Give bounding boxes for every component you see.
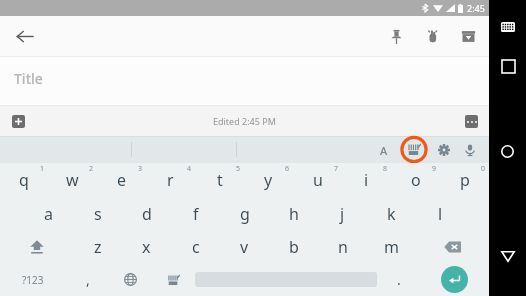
button[interactable]: Switch keyboard <box>397 136 431 163</box>
staticText: g <box>240 203 250 225</box>
staticText: f <box>193 203 199 225</box>
staticText: Title <box>14 69 43 88</box>
staticText: a <box>44 203 53 225</box>
button[interactable]: Recents <box>495 53 521 79</box>
staticText: 9 <box>432 164 437 174</box>
staticText: 3 <box>138 164 143 174</box>
button[interactable]: Text style <box>371 137 397 163</box>
staticText: 0 <box>481 164 486 174</box>
button[interactable]: Space <box>195 269 377 290</box>
button[interactable]: Archive <box>453 21 483 51</box>
button[interactable]: i <box>342 163 391 197</box>
button[interactable]: r <box>146 163 195 197</box>
staticText: Edited 2:45 PM <box>213 115 276 127</box>
button[interactable]: t <box>195 163 244 197</box>
button[interactable]: Pin <box>381 21 411 51</box>
button[interactable]: n <box>318 230 367 263</box>
button[interactable]: u <box>293 163 342 197</box>
staticText: l <box>438 203 443 225</box>
staticText: i <box>364 169 369 191</box>
staticText: c <box>192 236 200 258</box>
button[interactable]: Add <box>8 111 28 131</box>
staticText: k <box>387 203 396 225</box>
staticText: . <box>397 270 401 289</box>
button[interactable]: Back <box>496 244 520 268</box>
button[interactable]: Back <box>8 20 40 52</box>
staticText: w <box>66 169 79 191</box>
button[interactable]: Settings <box>431 137 457 163</box>
button[interactable]: . <box>377 263 420 296</box>
staticText: 2:45 <box>467 2 485 14</box>
staticText: ?123 <box>22 273 44 287</box>
button[interactable]: Voice input <box>457 137 483 163</box>
button[interactable]: Enter <box>420 263 489 296</box>
staticText: b <box>289 236 299 258</box>
staticText: u <box>313 169 323 191</box>
staticText: 5 <box>236 164 241 174</box>
staticText: z <box>94 236 102 258</box>
staticText: o <box>411 169 421 191</box>
button[interactable]: More options <box>461 111 481 131</box>
button[interactable]: k <box>367 197 416 230</box>
button[interactable]: e <box>97 163 146 197</box>
staticText: t <box>217 169 223 191</box>
staticText: 2 <box>89 164 94 174</box>
button[interactable]: l <box>416 197 465 230</box>
button[interactable]: m <box>367 230 416 263</box>
button[interactable]: Home <box>496 140 519 163</box>
button[interactable]: v <box>220 230 269 263</box>
staticText: 8 <box>383 164 388 174</box>
button[interactable]: c <box>171 230 220 263</box>
button[interactable]: Hide keyboard <box>497 16 519 38</box>
staticText: y <box>264 169 273 191</box>
staticText: d <box>142 203 152 225</box>
staticText: s <box>94 203 102 225</box>
staticText: q <box>19 169 29 191</box>
staticText: x <box>142 236 151 258</box>
staticText: 6 <box>285 164 290 174</box>
button[interactable]: z <box>73 230 122 263</box>
button[interactable]: a <box>24 197 73 230</box>
button[interactable]: q <box>0 163 48 197</box>
staticText: A <box>380 143 388 158</box>
button[interactable]: w <box>48 163 97 197</box>
button[interactable]: g <box>220 197 269 230</box>
button[interactable]: ?123 <box>0 263 66 296</box>
staticText: , <box>86 270 90 289</box>
staticText: e <box>117 169 127 191</box>
button[interactable]: Language <box>109 263 152 296</box>
staticText: h <box>289 203 299 225</box>
staticText: v <box>240 236 249 258</box>
button[interactable]: x <box>122 230 171 263</box>
button[interactable]: f <box>171 197 220 230</box>
button[interactable]: Remind me <box>417 21 447 51</box>
button[interactable]: o <box>391 163 440 197</box>
staticText: j <box>340 203 345 225</box>
button[interactable]: Handwriting <box>152 263 195 296</box>
button[interactable]: h <box>269 197 318 230</box>
button[interactable]: d <box>122 197 171 230</box>
staticText: n <box>338 236 348 258</box>
staticText: 7 <box>334 164 339 174</box>
staticText: 4 <box>187 164 192 174</box>
button[interactable]: b <box>269 230 318 263</box>
staticText: r <box>167 169 174 191</box>
button[interactable]: Shift <box>0 230 73 263</box>
button[interactable]: s <box>73 197 122 230</box>
button[interactable]: Backspace <box>416 230 489 263</box>
staticText: p <box>460 169 470 191</box>
staticText: 1 <box>40 164 45 174</box>
staticText: m <box>384 236 399 258</box>
button[interactable]: j <box>318 197 367 230</box>
button[interactable]: p <box>440 163 489 197</box>
button[interactable]: y <box>244 163 293 197</box>
button[interactable]: , <box>66 263 109 296</box>
